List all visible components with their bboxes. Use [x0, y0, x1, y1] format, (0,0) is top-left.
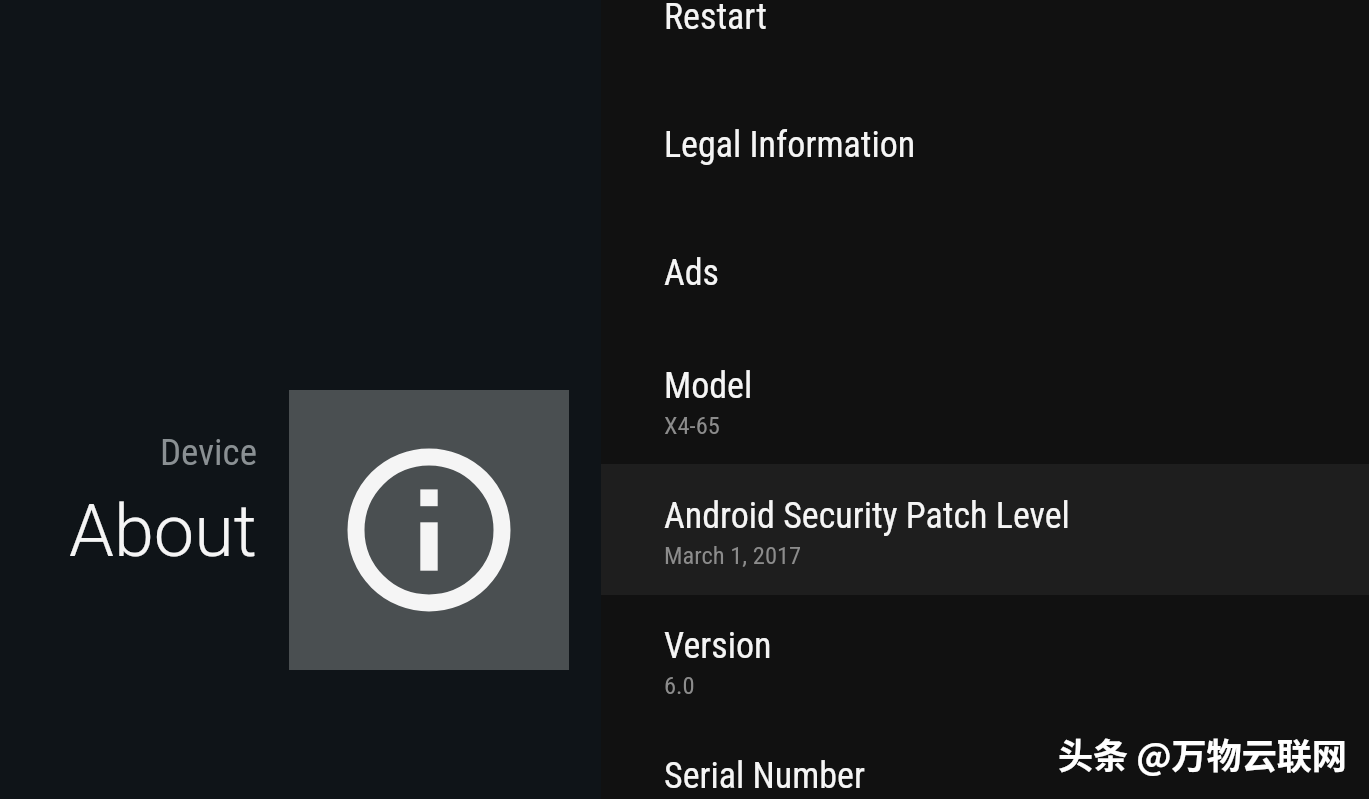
- staticText: 6.0: [664, 671, 695, 700]
- button[interactable]: Restart: [601, 0, 1369, 94]
- button[interactable]: Serial Number: [601, 724, 1369, 799]
- staticText: Legal Information: [664, 124, 916, 166]
- staticText: 头条 @万物云联网: [1058, 728, 1347, 779]
- staticText: Ads: [664, 252, 720, 294]
- staticText: Restart: [664, 0, 767, 38]
- button[interactable]: Ads: [601, 221, 1369, 350]
- staticText: March 1, 2017: [664, 541, 802, 570]
- staticText: Version: [664, 625, 772, 667]
- staticText: X4-65: [664, 411, 720, 440]
- staticText: Serial Number: [664, 755, 865, 797]
- button[interactable]: Legal Information: [601, 93, 1369, 222]
- button[interactable]: Model: [601, 334, 1369, 463]
- button[interactable]: Android Security Patch Level: [601, 464, 1369, 593]
- staticText: Device: [160, 431, 257, 474]
- staticText: Model: [664, 365, 753, 407]
- staticText: Android Security Patch Level: [664, 495, 1070, 537]
- button[interactable]: About device: [289, 390, 569, 670]
- button[interactable]: Version: [601, 594, 1369, 723]
- staticText: About: [69, 489, 257, 573]
